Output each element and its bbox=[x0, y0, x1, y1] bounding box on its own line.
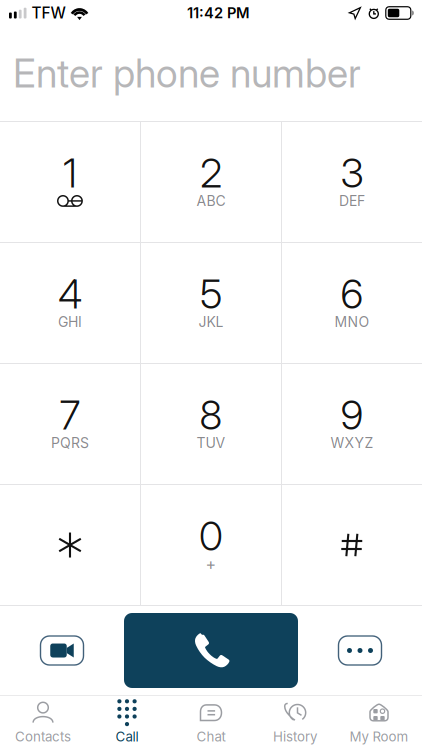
staticText: TFW bbox=[31, 4, 65, 22]
staticText: 11:42 PM bbox=[187, 4, 250, 22]
button[interactable]: Call bbox=[85, 696, 169, 750]
staticText: Enter phone number bbox=[13, 50, 361, 97]
staticText: ABC bbox=[196, 192, 225, 209]
button[interactable]: 9 bbox=[282, 364, 422, 484]
staticText: 3 bbox=[340, 149, 363, 197]
button[interactable] bbox=[0, 485, 140, 605]
staticText: TUV bbox=[196, 434, 225, 451]
button[interactable]: My Room bbox=[337, 696, 421, 750]
button[interactable]: 3 bbox=[282, 122, 422, 242]
staticText: 4 bbox=[58, 270, 82, 318]
staticText: MNO bbox=[334, 313, 369, 330]
staticText: JKL bbox=[198, 313, 223, 330]
button[interactable]: History bbox=[253, 696, 337, 750]
button[interactable]: More options bbox=[298, 606, 422, 695]
button[interactable]: 7 bbox=[0, 364, 140, 484]
staticText: History bbox=[273, 729, 317, 745]
staticText: WXYZ bbox=[330, 434, 373, 451]
staticText: DEF bbox=[339, 192, 365, 209]
staticText: 2 bbox=[200, 149, 222, 197]
staticText: 0 bbox=[199, 512, 223, 560]
staticText: 1 bbox=[63, 149, 77, 197]
button[interactable]: 2 bbox=[141, 122, 281, 242]
staticText: Contacts bbox=[15, 729, 71, 745]
button[interactable] bbox=[282, 485, 422, 605]
button[interactable]: Video call bbox=[0, 606, 124, 695]
staticText: 8 bbox=[199, 391, 222, 439]
button[interactable]: 5 bbox=[141, 243, 281, 363]
button[interactable]: 8 bbox=[141, 364, 281, 484]
button[interactable]: 6 bbox=[282, 243, 422, 363]
staticText: 7 bbox=[59, 391, 80, 439]
button[interactable]: 0 bbox=[141, 485, 281, 605]
staticText: GHI bbox=[58, 313, 82, 330]
staticText: + bbox=[205, 554, 216, 574]
staticText: Call bbox=[115, 729, 138, 745]
staticText: 6 bbox=[340, 270, 363, 318]
button[interactable]: 4 bbox=[0, 243, 140, 363]
staticText: Chat bbox=[196, 729, 225, 745]
button[interactable]: Contacts bbox=[1, 696, 85, 750]
button[interactable]: 1 bbox=[0, 122, 140, 242]
staticText: PQRS bbox=[51, 434, 89, 451]
staticText: My Room bbox=[349, 729, 408, 745]
staticText: 5 bbox=[200, 270, 222, 318]
button[interactable]: Chat bbox=[169, 696, 253, 750]
staticText: 9 bbox=[340, 391, 363, 439]
button[interactable]: Call bbox=[124, 606, 298, 695]
